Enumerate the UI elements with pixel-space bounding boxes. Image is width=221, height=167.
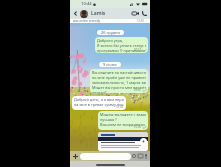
- staticText: 9 січня: [103, 62, 117, 67]
- button[interactable]: Можем выложете с вами то: [98, 111, 148, 130]
- staticText: Lamis: [91, 10, 106, 17]
- staticText: 10:44: [81, 1, 92, 7]
- staticText: Я хотель бы узнать статус моей: [97, 43, 146, 48]
- staticText: Добрый день, я я вам вернула,: [74, 97, 124, 102]
- staticText: но мне приёл уже не нравится эта: [92, 75, 146, 80]
- button[interactable]: Stickers: [131, 151, 137, 161]
- staticText: Может вы просто мне вернёте: [92, 85, 146, 90]
- button[interactable]: Gallery: [137, 151, 143, 161]
- staticText: 26 грудня: [101, 30, 120, 35]
- staticText: Можем выложете с вами то: [100, 112, 146, 117]
- staticText: на мне в тревае сумму писали: [74, 102, 124, 107]
- staticText: Вышлем не координаты деньги: [100, 122, 146, 127]
- staticText: 07:17: [134, 48, 142, 52]
- staticText: лучшая ?: [100, 117, 117, 122]
- button[interactable]: 9 січня: [99, 62, 121, 67]
- button[interactable]: Call: [140, 8, 149, 19]
- button[interactable]: 26 грудня: [97, 30, 124, 35]
- button[interactable]: Photo attachment: [98, 132, 148, 151]
- staticText: 09:41: [134, 88, 142, 92]
- button[interactable]: Вы изжните за настойчивость ,: [90, 69, 148, 93]
- staticText: 10:05: [134, 125, 142, 129]
- button[interactable]: [80, 153, 131, 160]
- button[interactable]: Добрый день, я я вам вернула,: [72, 96, 126, 110]
- staticText: Вы изжните за настойчивость ,: [92, 70, 146, 75]
- staticText: Доброго утра,: [97, 38, 123, 43]
- button[interactable]: Доброго утра,: [95, 37, 148, 53]
- staticText: was online recently: [73, 19, 101, 23]
- staticText: программы ?) принимали ле: [97, 48, 146, 53]
- button[interactable]: Video call: [131, 8, 140, 19]
- staticText: занимательность, 1 марта закуп: [92, 80, 146, 85]
- staticText: 10:02: [116, 105, 124, 109]
- button[interactable]: Lamis: [80, 8, 131, 19]
- button[interactable]: Attach: [70, 151, 80, 161]
- staticText: деньги?: [92, 90, 107, 93]
- staticText: 12:30: [137, 19, 144, 23]
- button[interactable]: Voice message: [143, 151, 149, 161]
- button[interactable]: Back: [70, 8, 80, 19]
